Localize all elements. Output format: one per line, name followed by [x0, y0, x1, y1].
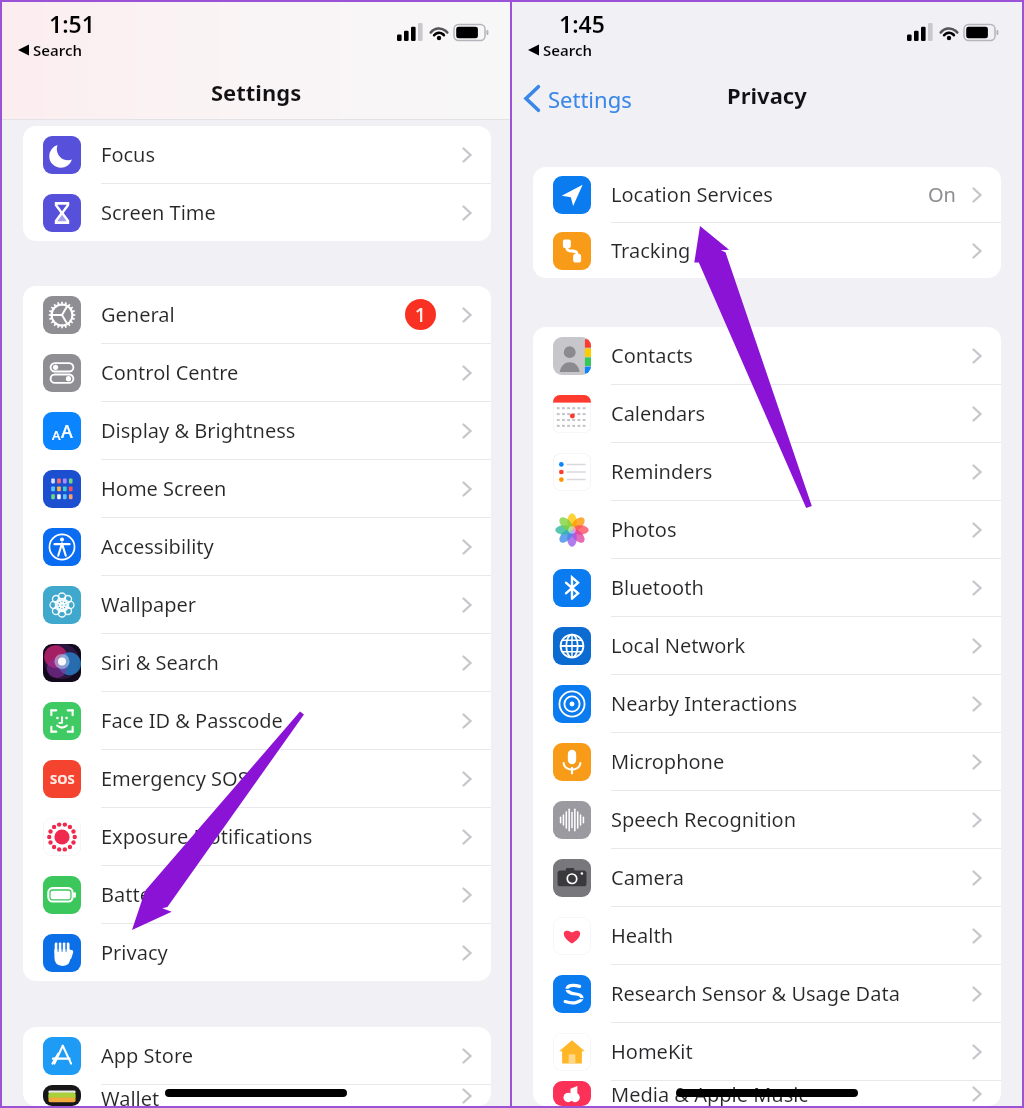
staticText: Research Sensor & Usage Data — [611, 980, 900, 1007]
staticText: Photos — [611, 516, 677, 543]
staticText: Privacy — [101, 939, 168, 966]
button[interactable]: Local Network — [533, 617, 1001, 674]
staticText: Privacy — [727, 80, 807, 110]
staticText: Display & Brightness — [101, 417, 296, 444]
staticText: Wallet — [101, 1085, 160, 1106]
button[interactable]: Location Services — [533, 167, 1001, 222]
staticText: Emergency SOS — [101, 765, 249, 792]
staticText: A — [61, 419, 73, 444]
staticText: Speech Recognition — [611, 806, 797, 833]
button[interactable]: App Store — [23, 1027, 491, 1084]
button[interactable]: Research Sensor & Usage Data — [533, 965, 1001, 1022]
staticText: Accessibility — [101, 533, 214, 560]
button[interactable]: Wallet — [23, 1085, 491, 1106]
button[interactable]: Tracking — [533, 223, 1001, 278]
button[interactable]: Wallpaper — [23, 576, 491, 633]
staticText: Screen Time — [101, 199, 216, 226]
staticText: App Store — [101, 1042, 194, 1069]
staticText: Exposure Notifications — [101, 823, 313, 850]
button[interactable]: Reminders — [533, 443, 1001, 500]
staticText: Settings — [211, 77, 302, 107]
button[interactable]: Photos — [533, 501, 1001, 558]
button[interactable]: General — [23, 286, 491, 343]
staticText: Media & Apple Music — [611, 1081, 808, 1106]
button[interactable]: Speech Recognition — [533, 791, 1001, 848]
staticText: 1:45 — [559, 8, 605, 39]
staticText: Tracking — [611, 237, 691, 264]
button[interactable]: Microphone — [533, 733, 1001, 790]
button[interactable]: Health — [533, 907, 1001, 964]
button[interactable]: Nearby Interactions — [533, 675, 1001, 732]
button[interactable]: Siri & Search — [23, 634, 491, 691]
staticText: Focus — [101, 141, 156, 168]
staticText: Search — [543, 40, 593, 60]
staticText: Location Services — [611, 181, 773, 208]
staticText: Health — [611, 922, 674, 949]
staticText: Contacts — [611, 342, 693, 369]
button[interactable]: Bluetooth — [533, 559, 1001, 616]
staticText: Face ID & Passcode — [101, 707, 283, 734]
other: Cellular signal, Wi-Fi and battery statu… — [907, 23, 1007, 45]
staticText: Battery — [101, 881, 170, 908]
staticText: Local Network — [611, 632, 746, 659]
button[interactable]: Screen Time — [23, 184, 491, 241]
button[interactable]: Home indicator — [676, 1089, 858, 1097]
button[interactable]: Control Centre — [23, 344, 491, 401]
button[interactable]: A — [23, 402, 491, 459]
button[interactable]: Contacts — [533, 327, 1001, 384]
staticText: Control Centre — [101, 359, 239, 386]
staticText: Calendars — [611, 400, 706, 427]
button[interactable]: Settings — [522, 83, 632, 114]
staticText: HomeKit — [611, 1038, 693, 1065]
staticText: Nearby Interactions — [611, 690, 797, 717]
other: Cellular signal, Wi-Fi and battery statu… — [397, 23, 497, 45]
staticText: General — [101, 301, 175, 328]
staticText: Search — [33, 40, 83, 60]
button[interactable]: Battery — [23, 866, 491, 923]
staticText: Home Screen — [101, 475, 227, 502]
staticText: On — [928, 181, 956, 208]
button[interactable]: Calendars — [533, 385, 1001, 442]
button[interactable]: Home indicator — [165, 1089, 347, 1097]
staticText: Settings — [548, 84, 632, 114]
button[interactable]: HomeKit — [533, 1023, 1001, 1080]
button[interactable]: Privacy — [23, 924, 491, 981]
button[interactable]: Exposure Notifications — [23, 808, 491, 865]
staticText: Reminders — [611, 458, 713, 485]
button[interactable]: Media & Apple Music — [533, 1081, 1001, 1106]
staticText: Camera — [611, 864, 684, 891]
staticText: Bluetooth — [611, 574, 704, 601]
button[interactable]: Home Screen — [23, 460, 491, 517]
staticText: A — [52, 426, 61, 444]
button[interactable]: Focus — [23, 126, 491, 183]
staticText: 1 — [415, 302, 426, 328]
staticText: Microphone — [611, 748, 725, 775]
button[interactable]: Camera — [533, 849, 1001, 906]
button[interactable]: Accessibility — [23, 518, 491, 575]
button[interactable]: SOS — [23, 750, 491, 807]
button[interactable]: Search — [528, 40, 593, 60]
button[interactable]: Face ID & Passcode — [23, 692, 491, 749]
staticText: SOS — [50, 770, 75, 788]
staticText: Wallpaper — [101, 591, 197, 618]
staticText: Siri & Search — [101, 649, 219, 676]
staticText: 1:51 — [49, 8, 95, 39]
button[interactable]: Search — [18, 40, 83, 60]
